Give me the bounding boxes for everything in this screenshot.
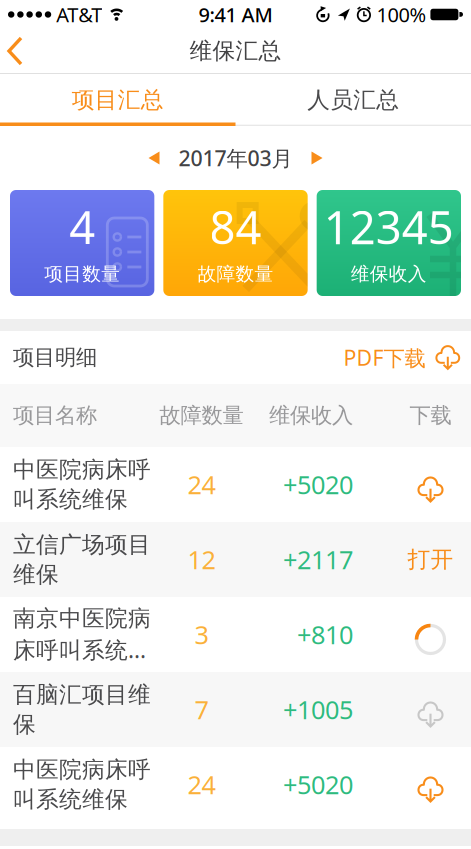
staticText: 故障数量 xyxy=(159,402,243,429)
staticText: 项目汇总 xyxy=(72,86,164,114)
button[interactable]: PDF下载 xyxy=(344,343,463,372)
staticText: 中医院病床呼 xyxy=(13,456,151,483)
staticText: 维保收入 xyxy=(351,263,427,285)
staticText: +5020 xyxy=(283,468,353,501)
button[interactable]: Back xyxy=(0,30,34,72)
staticText: 4 xyxy=(69,196,95,257)
button[interactable]: 下载 xyxy=(390,756,471,812)
staticText: 12345 xyxy=(324,196,454,257)
staticText: 床呼叫系统... xyxy=(13,634,146,664)
staticText: 保 xyxy=(13,710,36,738)
button[interactable]: 上个月 xyxy=(148,151,159,164)
staticText: 维保汇总 xyxy=(189,37,281,65)
button[interactable]: 人员汇总 xyxy=(235,76,471,124)
staticText: 维保收入 xyxy=(269,402,353,429)
staticText: AT&T xyxy=(56,1,102,28)
staticText: 项目名称 xyxy=(13,402,97,429)
staticText: 百脑汇项目维 xyxy=(13,681,151,708)
staticText: 打开 xyxy=(407,546,453,573)
staticText: 24 xyxy=(187,468,215,501)
staticText: 项目数量 xyxy=(44,263,120,285)
staticText: +2117 xyxy=(283,543,353,576)
button[interactable]: 下个月 xyxy=(311,151,322,164)
staticText: 2017年03月 xyxy=(178,144,292,172)
staticText: 人员汇总 xyxy=(307,86,399,114)
staticText: 7 xyxy=(194,693,208,726)
staticText: 9:41 AM xyxy=(198,1,272,28)
staticText: 12 xyxy=(187,543,215,576)
button[interactable]: 下载 xyxy=(390,456,471,512)
staticText: 叫系统维保 xyxy=(13,785,128,813)
staticText: +5020 xyxy=(283,768,353,801)
staticText: 南京中医院病 xyxy=(13,604,151,632)
staticText: 项目明细 xyxy=(13,344,97,371)
staticText: 叫系统维保 xyxy=(13,485,128,513)
button[interactable]: 下载 xyxy=(390,606,471,662)
staticText: 立信广场项目 xyxy=(13,531,151,558)
staticText: 故障数量 xyxy=(197,263,273,285)
staticText: +1005 xyxy=(283,693,353,726)
staticText: 84 xyxy=(209,196,261,257)
button[interactable]: 下载 xyxy=(390,681,471,737)
button[interactable]: 项目汇总 xyxy=(0,76,235,124)
button[interactable]: 打开 xyxy=(390,531,471,587)
staticText: PDF下载 xyxy=(344,343,426,372)
staticText: 3 xyxy=(194,618,208,651)
staticText: +810 xyxy=(297,618,353,651)
staticText: 下载 xyxy=(409,402,451,429)
staticText: 24 xyxy=(187,768,215,801)
staticText: 100% xyxy=(376,1,426,28)
staticText: 维保 xyxy=(13,560,59,588)
staticText: 中医院病床呼 xyxy=(13,756,151,783)
